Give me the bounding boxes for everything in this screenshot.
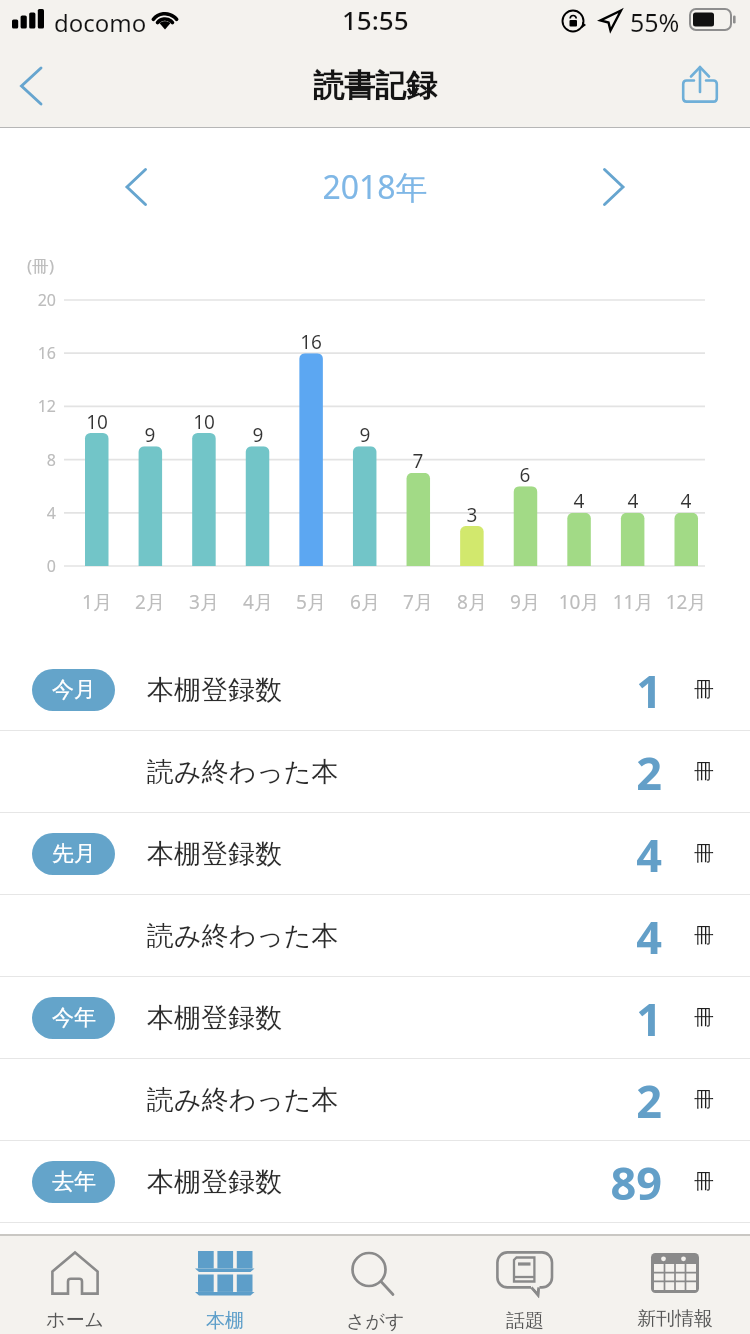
button[interactable]: 新刊情報 bbox=[600, 1236, 750, 1334]
staticText: 12 bbox=[16, 395, 56, 417]
staticText: 本棚登録数 bbox=[147, 837, 282, 871]
button[interactable]: 去年 bbox=[0, 1141, 750, 1222]
button[interactable]: 先月 bbox=[0, 813, 750, 894]
staticText: 7月 bbox=[383, 589, 453, 615]
button[interactable]: Back bbox=[0, 49, 64, 123]
staticText: 8 bbox=[16, 449, 56, 471]
staticText: 冊 bbox=[694, 1005, 714, 1030]
button[interactable]: 話題 bbox=[450, 1236, 600, 1334]
staticText: 2 bbox=[502, 1070, 662, 1131]
staticText: 9 bbox=[120, 422, 180, 448]
staticText: 16 bbox=[281, 329, 341, 355]
staticText: 1 bbox=[502, 660, 662, 721]
staticText: 15:55 bbox=[342, 2, 409, 37]
staticText: 先月 bbox=[52, 840, 96, 868]
staticText: 10月 bbox=[544, 589, 614, 615]
staticText: (冊) bbox=[27, 254, 55, 277]
staticText: 本棚登録数 bbox=[147, 1165, 282, 1199]
staticText: 今月 bbox=[52, 676, 96, 704]
staticText: 9月 bbox=[490, 589, 560, 615]
staticText: 6月 bbox=[330, 589, 400, 615]
staticText: 3 bbox=[442, 502, 502, 528]
staticText: 話題 bbox=[506, 1309, 544, 1333]
staticText: 8月 bbox=[437, 589, 507, 615]
staticText: 本棚登録数 bbox=[147, 1001, 282, 1035]
staticText: 読み終わった本 bbox=[147, 1083, 339, 1117]
staticText: 4 bbox=[16, 502, 56, 524]
button[interactable]: Share bbox=[664, 47, 736, 121]
staticText: 1月 bbox=[62, 589, 132, 615]
staticText: 9 bbox=[335, 422, 395, 448]
staticText: 9 bbox=[228, 422, 288, 448]
button[interactable]: 読み終わった本 bbox=[0, 1059, 750, 1140]
button[interactable]: 本棚 bbox=[150, 1236, 300, 1334]
staticText: 4月 bbox=[223, 589, 293, 615]
staticText: 16 bbox=[16, 342, 56, 364]
staticText: 10 bbox=[174, 409, 234, 435]
button[interactable]: 今年 bbox=[0, 977, 750, 1058]
button[interactable]: ホーム bbox=[0, 1236, 150, 1334]
staticText: さがす bbox=[346, 1310, 405, 1334]
button[interactable]: 読み終わった本 bbox=[0, 895, 750, 976]
staticText: 20 bbox=[16, 289, 56, 311]
staticText: 3月 bbox=[169, 589, 239, 615]
staticText: 4 bbox=[502, 824, 662, 885]
staticText: 4 bbox=[656, 488, 716, 514]
staticText: 2018年 bbox=[0, 165, 750, 209]
button[interactable]: 読み終わった本 bbox=[0, 731, 750, 812]
staticText: 1 bbox=[502, 988, 662, 1049]
staticText: 11月 bbox=[598, 589, 668, 615]
staticText: 読み終わった本 bbox=[147, 755, 339, 789]
staticText: 去年 bbox=[52, 1168, 96, 1196]
staticText: 本棚 bbox=[206, 1309, 244, 1333]
button[interactable]: さがす bbox=[300, 1236, 450, 1334]
staticText: ホーム bbox=[46, 1308, 104, 1332]
staticText: 新刊情報 bbox=[637, 1307, 713, 1331]
staticText: 冊 bbox=[694, 677, 714, 702]
staticText: 冊 bbox=[694, 1087, 714, 1112]
staticText: 本棚登録数 bbox=[147, 673, 282, 707]
staticText: 12月 bbox=[651, 589, 721, 615]
staticText: 4 bbox=[603, 488, 663, 514]
staticText: 55% bbox=[630, 5, 680, 39]
staticText: 今年 bbox=[52, 1004, 96, 1032]
staticText: 2月 bbox=[115, 589, 185, 615]
staticText: 読書記録 bbox=[0, 66, 750, 105]
staticText: 読み終わった本 bbox=[147, 919, 339, 953]
staticText: 4 bbox=[549, 488, 609, 514]
staticText: 2 bbox=[502, 742, 662, 803]
staticText: 0 bbox=[16, 555, 56, 577]
button[interactable]: 今月 bbox=[0, 649, 750, 730]
staticText: 6 bbox=[495, 462, 555, 488]
staticText: 7 bbox=[388, 448, 448, 474]
button[interactable]: Previous year bbox=[106, 152, 168, 222]
staticText: 4 bbox=[502, 906, 662, 967]
staticText: 89 bbox=[502, 1152, 662, 1213]
staticText: 冊 bbox=[694, 923, 714, 948]
staticText: docomo bbox=[54, 6, 147, 39]
staticText: 5月 bbox=[276, 589, 346, 615]
staticText: 冊 bbox=[694, 1169, 714, 1194]
staticText: 10 bbox=[67, 409, 127, 435]
staticText: 冊 bbox=[694, 841, 714, 866]
staticText: 冊 bbox=[694, 759, 714, 784]
button[interactable]: Next year bbox=[582, 152, 644, 222]
